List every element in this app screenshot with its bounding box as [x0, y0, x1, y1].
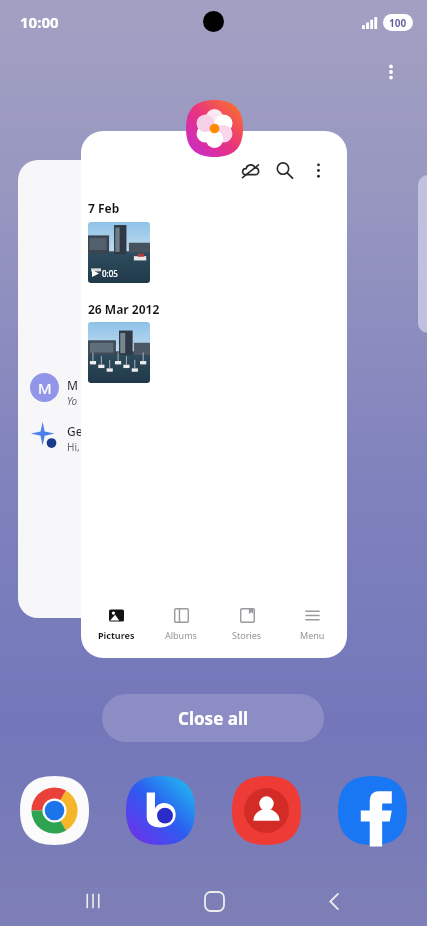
staticText: Stories: [232, 629, 262, 641]
button[interactable]: [88, 322, 150, 383]
staticText: 0:05: [102, 268, 118, 279]
button[interactable]: Back: [306, 876, 362, 926]
button[interactable]: [186, 100, 243, 157]
button[interactable]: Facebook: [338, 776, 407, 845]
button[interactable]: Recent apps: [65, 876, 121, 926]
staticText: M: [38, 378, 52, 398]
button[interactable]: [418, 175, 427, 333]
button[interactable]: Stories: [217, 607, 277, 641]
button[interactable]: Home: [186, 876, 242, 926]
button[interactable]: Albums: [151, 607, 211, 641]
button[interactable]: More options: [301, 153, 335, 187]
staticText: M: [67, 377, 79, 393]
button[interactable]: Cloud sync off: [81, 131, 347, 658]
staticText: 10:00: [20, 12, 59, 32]
staticText: 7 Feb: [88, 200, 120, 216]
button[interactable]: Contacts: [232, 776, 301, 845]
button[interactable]: Search: [267, 153, 301, 187]
staticText: Ge: [67, 423, 83, 439]
staticText: Hi,: [67, 440, 80, 454]
button[interactable]: More options: [371, 52, 411, 92]
button[interactable]: 0:05: [88, 222, 150, 283]
staticText: 100: [389, 16, 407, 30]
button[interactable]: Pictures: [86, 607, 146, 641]
button[interactable]: Cloud sync off: [233, 153, 267, 187]
button[interactable]: Bixby: [126, 776, 195, 845]
staticText: Close all: [178, 707, 249, 730]
staticText: Yo: [67, 394, 78, 408]
button[interactable]: Close all: [102, 694, 324, 742]
staticText: Pictures: [98, 629, 135, 641]
button[interactable]: M: [18, 160, 113, 618]
button[interactable]: Menu: [282, 607, 342, 641]
staticText: Albums: [165, 629, 197, 641]
staticText: Menu: [300, 629, 325, 641]
staticText: 26 Mar 2012: [88, 301, 160, 317]
button[interactable]: Chrome: [20, 776, 89, 845]
